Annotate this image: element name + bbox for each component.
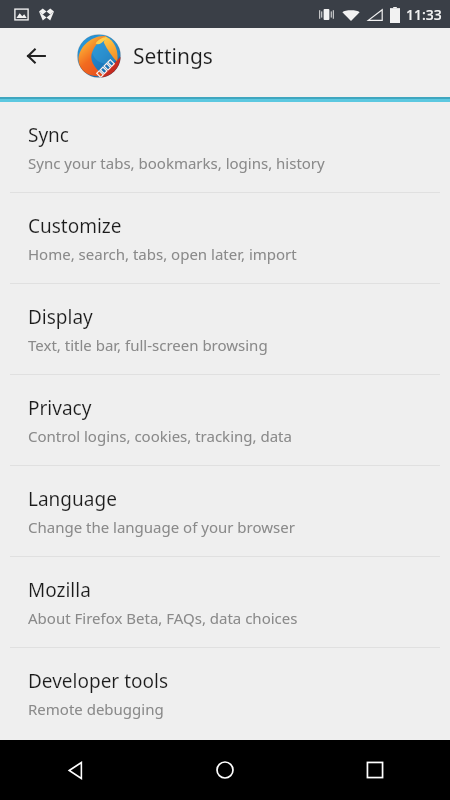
- staticText: Developer tools: [28, 668, 169, 694]
- staticText: Customize: [28, 213, 122, 239]
- button[interactable]: Back: [0, 740, 150, 800]
- button[interactable]: Navigate up: [8, 28, 64, 84]
- staticText: Language: [28, 486, 117, 512]
- staticText: Mozilla: [28, 577, 91, 603]
- staticText: Display: [28, 304, 93, 330]
- button[interactable]: Developer tools: [0, 648, 450, 738]
- staticText: Change the language of your browser: [28, 517, 295, 537]
- staticText: Settings: [133, 42, 213, 71]
- staticText: Sync: [28, 122, 69, 148]
- staticText: Remote debugging: [28, 699, 164, 719]
- button[interactable]: Customize: [0, 193, 450, 283]
- button[interactable]: Recent apps: [300, 740, 450, 800]
- staticText: 11:33: [406, 5, 442, 24]
- staticText: Home, search, tabs, open later, import: [28, 244, 297, 264]
- staticText: Control logins, cookies, tracking, data: [28, 426, 292, 446]
- staticText: About Firefox Beta, FAQs, data choices: [28, 608, 298, 628]
- staticText: Privacy: [28, 395, 92, 421]
- button[interactable]: Mozilla: [0, 557, 450, 647]
- button[interactable]: Home: [150, 740, 300, 800]
- button[interactable]: Language: [0, 466, 450, 556]
- button[interactable]: Privacy: [0, 375, 450, 465]
- button[interactable]: Sync: [0, 102, 450, 192]
- staticText: Text, title bar, full-screen browsing: [28, 335, 268, 355]
- staticText: Sync your tabs, bookmarks, logins, histo…: [28, 153, 325, 173]
- button[interactable]: Display: [0, 284, 450, 374]
